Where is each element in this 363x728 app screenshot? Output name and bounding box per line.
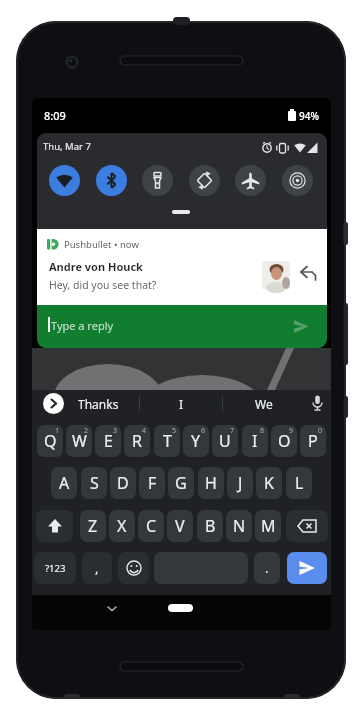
button[interactable]: W <box>66 425 92 457</box>
button[interactable] <box>235 165 266 196</box>
staticText: 5 <box>172 426 177 436</box>
staticText: R <box>132 430 142 452</box>
staticText: F <box>148 472 157 494</box>
staticText: ?123 <box>45 562 66 575</box>
staticText: Q <box>44 430 57 452</box>
button[interactable] <box>142 165 173 196</box>
staticText: We <box>255 396 273 412</box>
staticText: X <box>117 515 127 537</box>
button[interactable]: L <box>286 467 312 499</box>
staticText: M <box>261 515 276 537</box>
button[interactable] <box>96 165 127 196</box>
button[interactable]: S <box>81 467 107 499</box>
staticText: Thanks <box>78 396 119 412</box>
button[interactable] <box>300 266 318 282</box>
staticText: Hey, did you see that? <box>49 278 157 292</box>
staticText: 8:09 <box>44 108 66 123</box>
staticText: U <box>219 430 231 452</box>
button[interactable]: , <box>82 552 112 584</box>
staticText: 9 <box>289 426 294 436</box>
button[interactable] <box>282 165 313 196</box>
staticText: W <box>72 430 87 452</box>
staticText: . <box>265 559 269 577</box>
button[interactable]: A <box>51 467 77 499</box>
staticText: A <box>59 472 70 494</box>
staticText: D <box>117 472 129 494</box>
staticText: G <box>175 472 187 494</box>
button[interactable]: H <box>198 467 224 499</box>
button[interactable]: G <box>168 467 194 499</box>
staticText: L <box>295 472 304 494</box>
button[interactable] <box>36 510 73 542</box>
button[interactable] <box>104 602 120 614</box>
button[interactable]: X <box>109 510 135 542</box>
button[interactable]: I <box>242 425 268 457</box>
button[interactable]: B <box>197 510 223 542</box>
button[interactable]: Pushbullet • now <box>37 229 327 305</box>
button[interactable]: F <box>139 467 165 499</box>
button[interactable]: Z <box>80 510 106 542</box>
button[interactable]: K <box>256 467 282 499</box>
staticText: 8 <box>260 426 265 436</box>
button[interactable]: Thanks <box>68 390 128 417</box>
button[interactable] <box>168 604 193 612</box>
button[interactable]: V <box>167 510 193 542</box>
staticText: Y <box>191 430 201 452</box>
button[interactable] <box>310 394 325 414</box>
staticText: K <box>264 472 274 494</box>
staticText: Thu, Mar 7 <box>43 140 91 153</box>
button[interactable] <box>189 165 220 196</box>
button[interactable] <box>294 320 309 333</box>
staticText: , <box>95 559 99 577</box>
button[interactable]: . <box>254 552 280 584</box>
staticText: B <box>205 515 216 537</box>
button[interactable]: U <box>212 425 238 457</box>
staticText: 6 <box>201 426 206 436</box>
staticText: Pushbullet • now <box>64 238 139 251</box>
button[interactable] <box>287 552 327 584</box>
staticText: 4 <box>142 426 147 436</box>
button[interactable]: J <box>227 467 253 499</box>
button[interactable]: C <box>138 510 164 542</box>
button[interactable]: Type a reply <box>37 305 327 348</box>
button[interactable] <box>43 393 64 414</box>
button[interactable]: We <box>234 390 294 417</box>
button[interactable]: Q <box>37 425 63 457</box>
button[interactable] <box>49 165 80 196</box>
staticText: S <box>90 472 99 494</box>
button[interactable]: P <box>300 425 326 457</box>
staticText: 0 <box>318 426 323 436</box>
staticText: V <box>175 515 185 537</box>
staticText: C <box>146 515 157 537</box>
staticText: Z <box>88 515 98 537</box>
button[interactable]: Y <box>183 425 209 457</box>
staticText: 94% <box>299 109 319 123</box>
button[interactable] <box>118 552 149 584</box>
button[interactable]: R <box>124 425 150 457</box>
button[interactable]: N <box>226 510 252 542</box>
staticText: I <box>252 430 258 452</box>
button[interactable]: ?123 <box>34 552 76 584</box>
button[interactable]: T <box>154 425 180 457</box>
staticText: J <box>238 472 243 494</box>
staticText: P <box>308 430 318 452</box>
staticText: 3 <box>113 426 118 436</box>
staticText: Andre von Houck <box>49 259 143 274</box>
button[interactable] <box>286 510 328 542</box>
staticText: I <box>179 396 184 412</box>
staticText: 1 <box>55 426 60 436</box>
staticText: O <box>278 430 291 452</box>
staticText: E <box>104 430 113 452</box>
button[interactable]: O <box>271 425 297 457</box>
staticText: H <box>205 472 217 494</box>
staticText: 2 <box>84 426 89 436</box>
staticText: 7 <box>230 426 235 436</box>
staticText: N <box>233 515 246 537</box>
button[interactable]: D <box>110 467 136 499</box>
button[interactable]: M <box>255 510 281 542</box>
button[interactable]: I <box>151 390 211 417</box>
staticText: Type a reply <box>51 318 114 333</box>
staticText: T <box>163 430 172 452</box>
button[interactable]: E <box>95 425 121 457</box>
